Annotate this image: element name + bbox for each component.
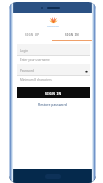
staticText: Login [20,49,29,53]
button[interactable]: Password [17,64,90,76]
staticText: LOGOTYPE [47,25,59,28]
staticText: SIGN IN [65,33,79,37]
staticText: Enter your username [20,58,50,62]
button[interactable]: Login [17,44,90,56]
staticText: Password [20,69,34,73]
staticText: Restore password [38,102,67,107]
button[interactable]: SIGN IN [17,87,90,98]
staticText: Minimum 8 characters [20,78,52,82]
button[interactable]: SIGN IN [52,33,92,41]
button[interactable]: Restore password [38,102,67,107]
staticText: SIGN UP [25,33,40,37]
staticText: SIGN IN [45,91,62,95]
button[interactable]: Show password [84,69,88,73]
button[interactable]: SIGN UP [13,33,52,41]
